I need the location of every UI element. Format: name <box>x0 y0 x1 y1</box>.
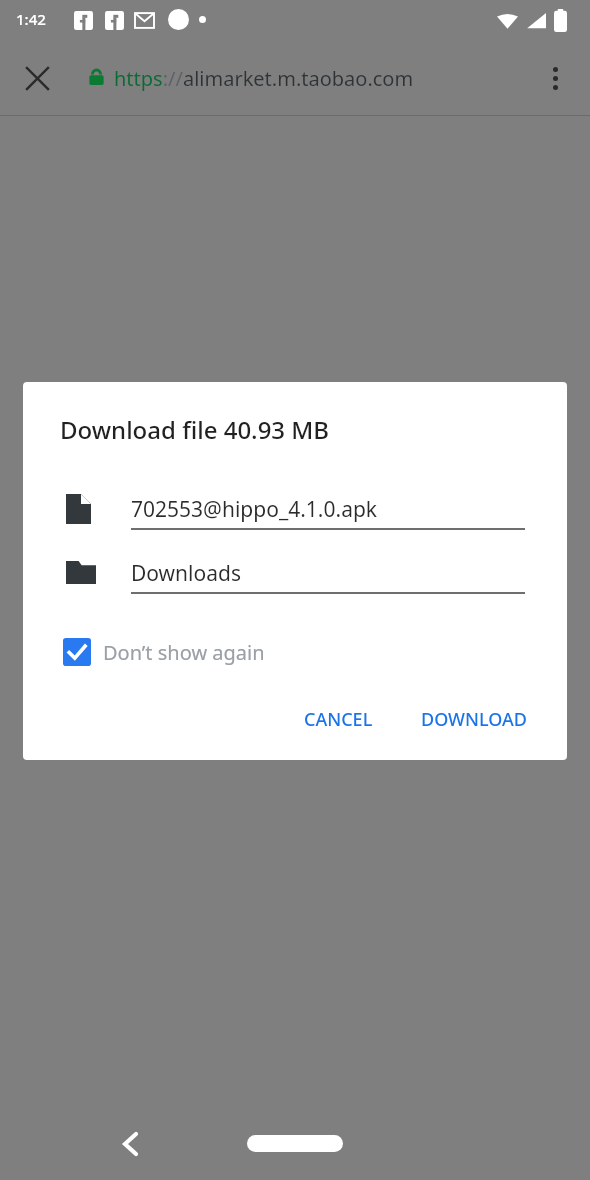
button[interactable]: Don’t show again <box>63 630 265 674</box>
staticText: https://alimarket.m.taobao.com <box>114 65 414 92</box>
staticText: 702553@hippo_4.1.0.apk <box>131 495 378 524</box>
staticText: Don’t show again <box>103 639 265 666</box>
staticText: Downloads <box>131 559 241 588</box>
button[interactable]: Close <box>13 54 61 102</box>
button[interactable]: Back <box>104 1118 156 1170</box>
staticText: 1:42 <box>16 9 46 29</box>
staticText: Download file 40.93 MB <box>60 413 330 446</box>
button[interactable]: CANCEL <box>291 695 386 743</box>
button[interactable]: DOWNLOAD <box>408 695 540 743</box>
staticText: CANCEL <box>304 707 373 732</box>
button[interactable]: https://alimarket.m.taobao.com <box>114 44 514 112</box>
button[interactable]: Home <box>247 1135 343 1152</box>
staticText: DOWNLOAD <box>421 707 527 732</box>
button[interactable]: More options <box>531 54 579 102</box>
